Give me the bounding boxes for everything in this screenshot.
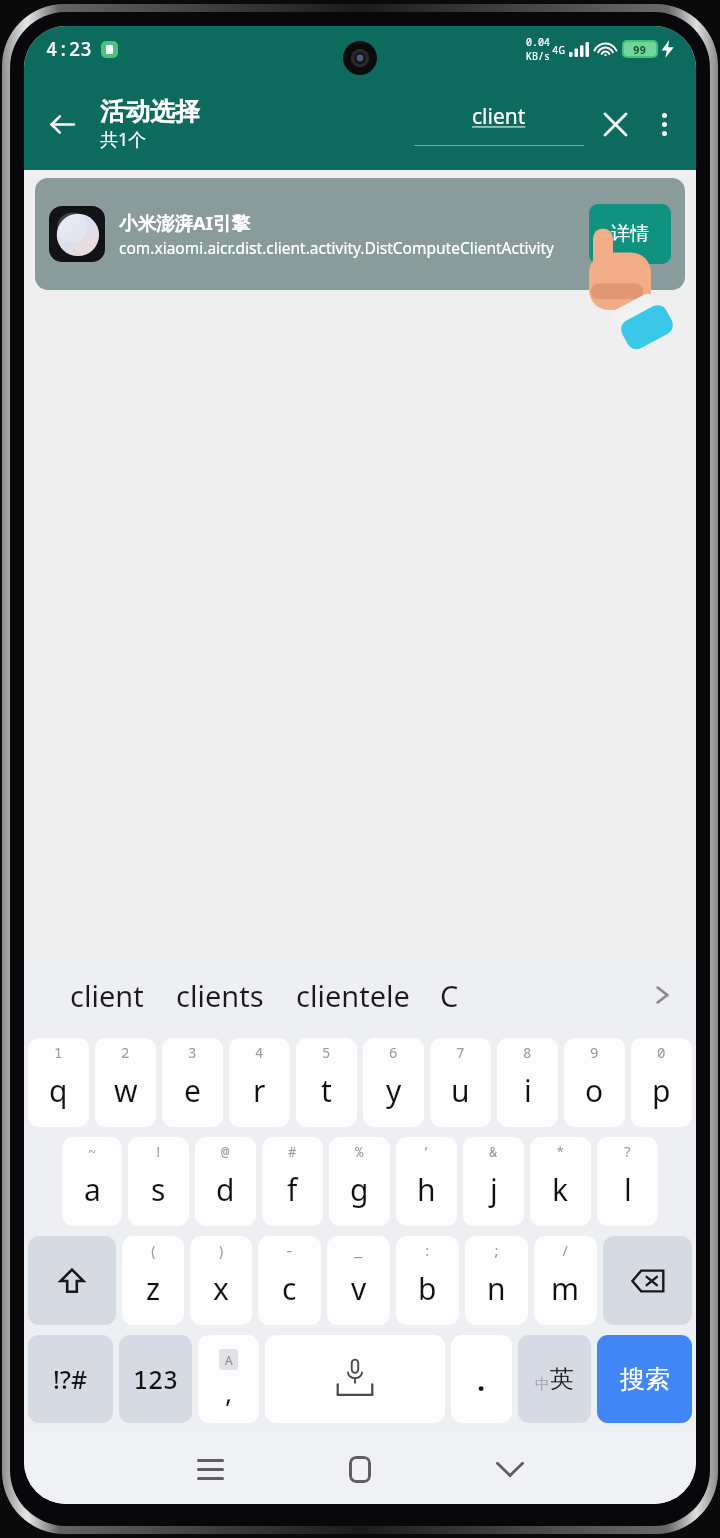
staticText: 5 [322, 1043, 331, 1062]
button[interactable]: Recents [164, 1438, 256, 1500]
button[interactable]: C [426, 976, 459, 1015]
staticText: % [355, 1142, 364, 1161]
staticText: ; [492, 1241, 501, 1260]
staticText: u [451, 1070, 470, 1111]
staticText: ? [623, 1142, 632, 1161]
button[interactable]: clients [160, 976, 280, 1015]
staticText: x [213, 1268, 229, 1309]
staticText: 英 [550, 1364, 574, 1394]
button[interactable]: Period [451, 1335, 512, 1423]
staticText: 共1个 [100, 127, 147, 152]
staticText: 0.04 [526, 35, 550, 49]
button[interactable]: Language switch [518, 1335, 591, 1423]
button[interactable]: 8 [497, 1038, 558, 1127]
staticText: 详情 [611, 222, 649, 246]
button[interactable]: 6 [363, 1038, 424, 1127]
staticText: 123 [133, 1362, 179, 1396]
staticText: / [561, 1241, 570, 1260]
staticText: clientele [296, 976, 410, 1015]
staticText: 1 [54, 1043, 63, 1062]
button[interactable]: @ [195, 1137, 256, 1226]
staticText: o [585, 1070, 604, 1111]
staticText: !?# [53, 1362, 88, 1396]
staticText: ’ [422, 1142, 431, 1161]
button[interactable]: ’ [396, 1137, 457, 1226]
staticText: 7 [456, 1043, 465, 1062]
staticText: # [288, 1142, 297, 1161]
button[interactable]: * [530, 1137, 591, 1226]
button[interactable]: % [329, 1137, 390, 1226]
staticText: , [225, 1373, 233, 1410]
button[interactable]: & [463, 1137, 524, 1226]
button[interactable]: !?# [28, 1335, 113, 1423]
button[interactable]: Home [314, 1438, 406, 1500]
button[interactable]: 123 [119, 1335, 192, 1423]
staticText: g [350, 1169, 369, 1210]
button[interactable]: Backspace [603, 1236, 692, 1325]
staticText: s [151, 1169, 166, 1210]
button[interactable]: ; [465, 1236, 528, 1325]
button[interactable]: 2 [95, 1038, 156, 1127]
button[interactable]: client [54, 976, 160, 1015]
button[interactable]: / [534, 1236, 597, 1325]
staticText: 99 [633, 42, 647, 56]
staticText: : [423, 1241, 432, 1260]
button[interactable]: 7 [430, 1038, 491, 1127]
staticText: 4G [552, 42, 566, 57]
staticText: h [417, 1169, 436, 1210]
staticText: 0 [657, 1043, 666, 1062]
staticText: r [253, 1070, 266, 1111]
staticText: com.xiaomi.aicr.dist.client.activity.Dis… [119, 237, 554, 258]
button[interactable]: ) [190, 1236, 252, 1325]
staticText: k [552, 1169, 569, 1210]
button[interactable]: 9 [564, 1038, 625, 1127]
staticText: j [490, 1169, 498, 1210]
button[interactable]: Shift [28, 1236, 116, 1325]
button[interactable]: 5 [296, 1038, 357, 1127]
button[interactable]: _ [327, 1236, 390, 1325]
button[interactable]: 小米澎湃AI引擎 [35, 178, 685, 290]
staticText: p [652, 1070, 671, 1111]
staticText: l [624, 1169, 632, 1210]
staticText: * [556, 1142, 565, 1161]
staticText: v [351, 1268, 367, 1309]
staticText: ! [154, 1142, 163, 1161]
button[interactable]: 0 [631, 1038, 692, 1127]
staticText: & [489, 1142, 498, 1161]
button[interactable]: More suggestions [638, 971, 686, 1019]
button[interactable]: # [262, 1137, 323, 1226]
button[interactable]: Space [265, 1335, 445, 1423]
button[interactable]: Clear [590, 99, 640, 149]
button[interactable]: ! [128, 1137, 189, 1226]
button[interactable]: ~ [62, 1137, 122, 1226]
staticText: 4 [255, 1043, 264, 1062]
button[interactable]: 详情 [589, 204, 671, 264]
staticText: ) [217, 1241, 226, 1260]
staticText: 6 [389, 1043, 398, 1062]
button[interactable]: Comma [198, 1335, 259, 1423]
button[interactable]: 1 [28, 1038, 89, 1127]
staticText: z [146, 1268, 161, 1309]
button[interactable]: More options [640, 100, 688, 148]
button[interactable]: Hide keyboard [464, 1438, 556, 1500]
staticText: 活动选择 [100, 96, 200, 127]
staticText: ~ [88, 1142, 97, 1161]
button[interactable]: Back [36, 98, 88, 150]
staticText: 搜索 [620, 1364, 670, 1395]
staticText: 中 [535, 1375, 550, 1394]
button[interactable]: 3 [162, 1038, 223, 1127]
button[interactable]: client [414, 102, 584, 146]
staticText: c [282, 1268, 297, 1309]
staticText: 小米澎湃AI引擎 [119, 210, 250, 235]
button[interactable]: 搜索 [597, 1335, 692, 1423]
button[interactable]: ( [122, 1236, 184, 1325]
button[interactable]: clientele [280, 976, 426, 1015]
staticText: clients [176, 976, 264, 1015]
staticText: client [472, 102, 526, 131]
button[interactable]: - [258, 1236, 321, 1325]
button[interactable]: 4 [229, 1038, 290, 1127]
staticText: w [114, 1070, 138, 1111]
button[interactable]: ? [597, 1137, 658, 1226]
staticText: 2 [121, 1043, 130, 1062]
button[interactable]: : [396, 1236, 459, 1325]
